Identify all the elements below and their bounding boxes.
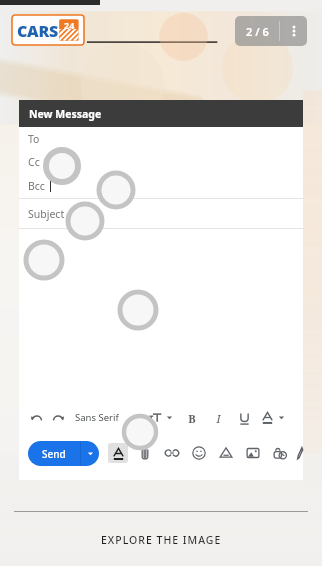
- button[interactable]: Bold: [185, 411, 199, 425]
- button[interactable]: Formatting options: [108, 443, 128, 463]
- button[interactable]: To: [19, 127, 303, 150]
- button[interactable]: Cc: [19, 150, 303, 173]
- staticText: Subject: [28, 207, 65, 221]
- button[interactable]: More options: [280, 16, 307, 46]
- staticText: I: [216, 411, 221, 425]
- button[interactable]: 2 / 6: [235, 16, 279, 46]
- staticText: To: [28, 132, 40, 146]
- button[interactable]: Insert signature: [297, 443, 303, 463]
- button[interactable]: Send: [28, 441, 80, 466]
- button[interactable]: New Message: [19, 100, 303, 127]
- staticText: Bcc: [28, 179, 45, 193]
- button[interactable]: Bcc: [19, 173, 303, 198]
- button[interactable]: [19, 229, 303, 403]
- staticText: 2 / 6: [246, 24, 269, 39]
- button[interactable]: Insert from Drive: [216, 443, 236, 463]
- staticText: New Message: [29, 107, 102, 121]
- button[interactable]: CARS24 logo: [12, 15, 84, 45]
- button[interactable]: Attach file: [135, 443, 155, 463]
- button[interactable]: Font family Sans Serif: [75, 411, 138, 424]
- button[interactable]: Redo: [51, 411, 65, 425]
- button[interactable]: Undo: [29, 411, 43, 425]
- staticText: Cc: [28, 155, 40, 169]
- staticText: EXPLORE THE IMAGE: [101, 533, 222, 547]
- button[interactable]: Insert photo: [243, 443, 263, 463]
- button[interactable]: Italic: [211, 411, 225, 425]
- button[interactable]: Insert link: [162, 443, 182, 463]
- button[interactable]: Confidential mode: [270, 443, 290, 463]
- staticText: CARS: [17, 20, 58, 42]
- button[interactable]: Subject: [19, 199, 303, 228]
- button[interactable]: Insert emoji: [189, 443, 209, 463]
- staticText: Sans Serif: [75, 411, 119, 424]
- staticText: B: [188, 411, 196, 425]
- button[interactable]: Send options: [81, 441, 99, 466]
- button[interactable]: Underline: [237, 411, 251, 425]
- button[interactable]: Text size: [149, 411, 173, 424]
- button[interactable]: Text color: [261, 411, 285, 424]
- staticText: Send: [42, 447, 66, 461]
- staticText: 24: [64, 19, 75, 31]
